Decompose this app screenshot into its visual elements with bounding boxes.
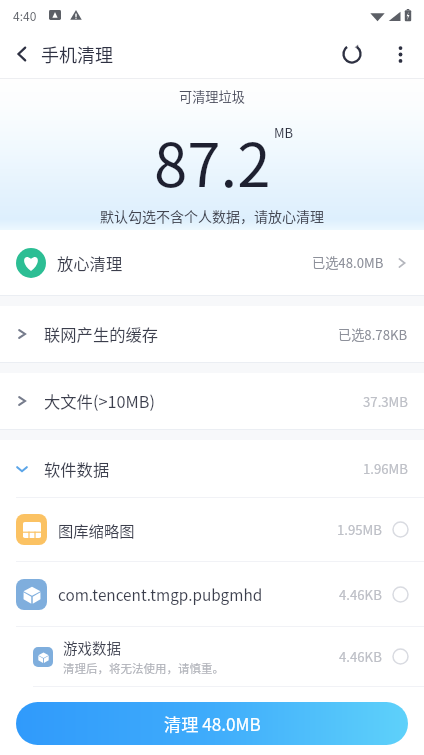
staticText: 4.46KB bbox=[339, 585, 382, 604]
staticText: 可清理垃圾 bbox=[179, 87, 245, 106]
staticText: 联网产生的缓存 bbox=[44, 322, 159, 346]
button[interactable]: More options bbox=[376, 30, 424, 78]
staticText: 4:40 bbox=[13, 7, 37, 24]
staticText: 87.2 bbox=[154, 117, 271, 204]
button[interactable]: 清理 48.0MB bbox=[16, 702, 408, 745]
staticText: 4.46KB bbox=[339, 647, 382, 666]
button[interactable]: com.tencent.tmgp.pubgmhd bbox=[0, 562, 424, 626]
staticText: 放心清理 bbox=[57, 251, 123, 275]
button[interactable]: 软件数据 bbox=[0, 440, 424, 497]
staticText: MB bbox=[274, 123, 294, 142]
staticText: 已选8.78KB bbox=[338, 325, 408, 344]
staticText: 1.96MB bbox=[363, 459, 408, 478]
staticText: 图库缩略图 bbox=[58, 519, 135, 541]
button[interactable]: 放心清理 bbox=[0, 230, 424, 295]
staticText: 37.3MB bbox=[363, 392, 408, 411]
staticText: 软件数据 bbox=[44, 457, 110, 481]
staticText: 清理后，将无法使用，请慎重。 bbox=[63, 660, 224, 677]
button[interactable]: Refresh bbox=[328, 30, 376, 78]
staticText: 清理 48.0MB bbox=[164, 711, 261, 736]
staticText: 1.95MB bbox=[337, 520, 382, 539]
button[interactable]: Back bbox=[0, 32, 44, 76]
staticText: com.tencent.tmgp.pubgmhd bbox=[58, 583, 263, 605]
staticText: 已选48.0MB bbox=[312, 253, 384, 272]
staticText: 默认勾选不含个人数据，请放心清理 bbox=[100, 206, 324, 226]
staticText: 游戏数据 bbox=[63, 637, 121, 658]
staticText: 大文件(>10MB) bbox=[44, 389, 155, 413]
button[interactable]: 联网产生的缓存 bbox=[0, 306, 424, 362]
button[interactable]: 大文件(>10MB) bbox=[0, 373, 424, 429]
button[interactable]: 图库缩略图 bbox=[0, 498, 424, 561]
button[interactable]: 游戏数据 bbox=[0, 627, 424, 686]
staticText: 手机清理 bbox=[41, 41, 113, 67]
